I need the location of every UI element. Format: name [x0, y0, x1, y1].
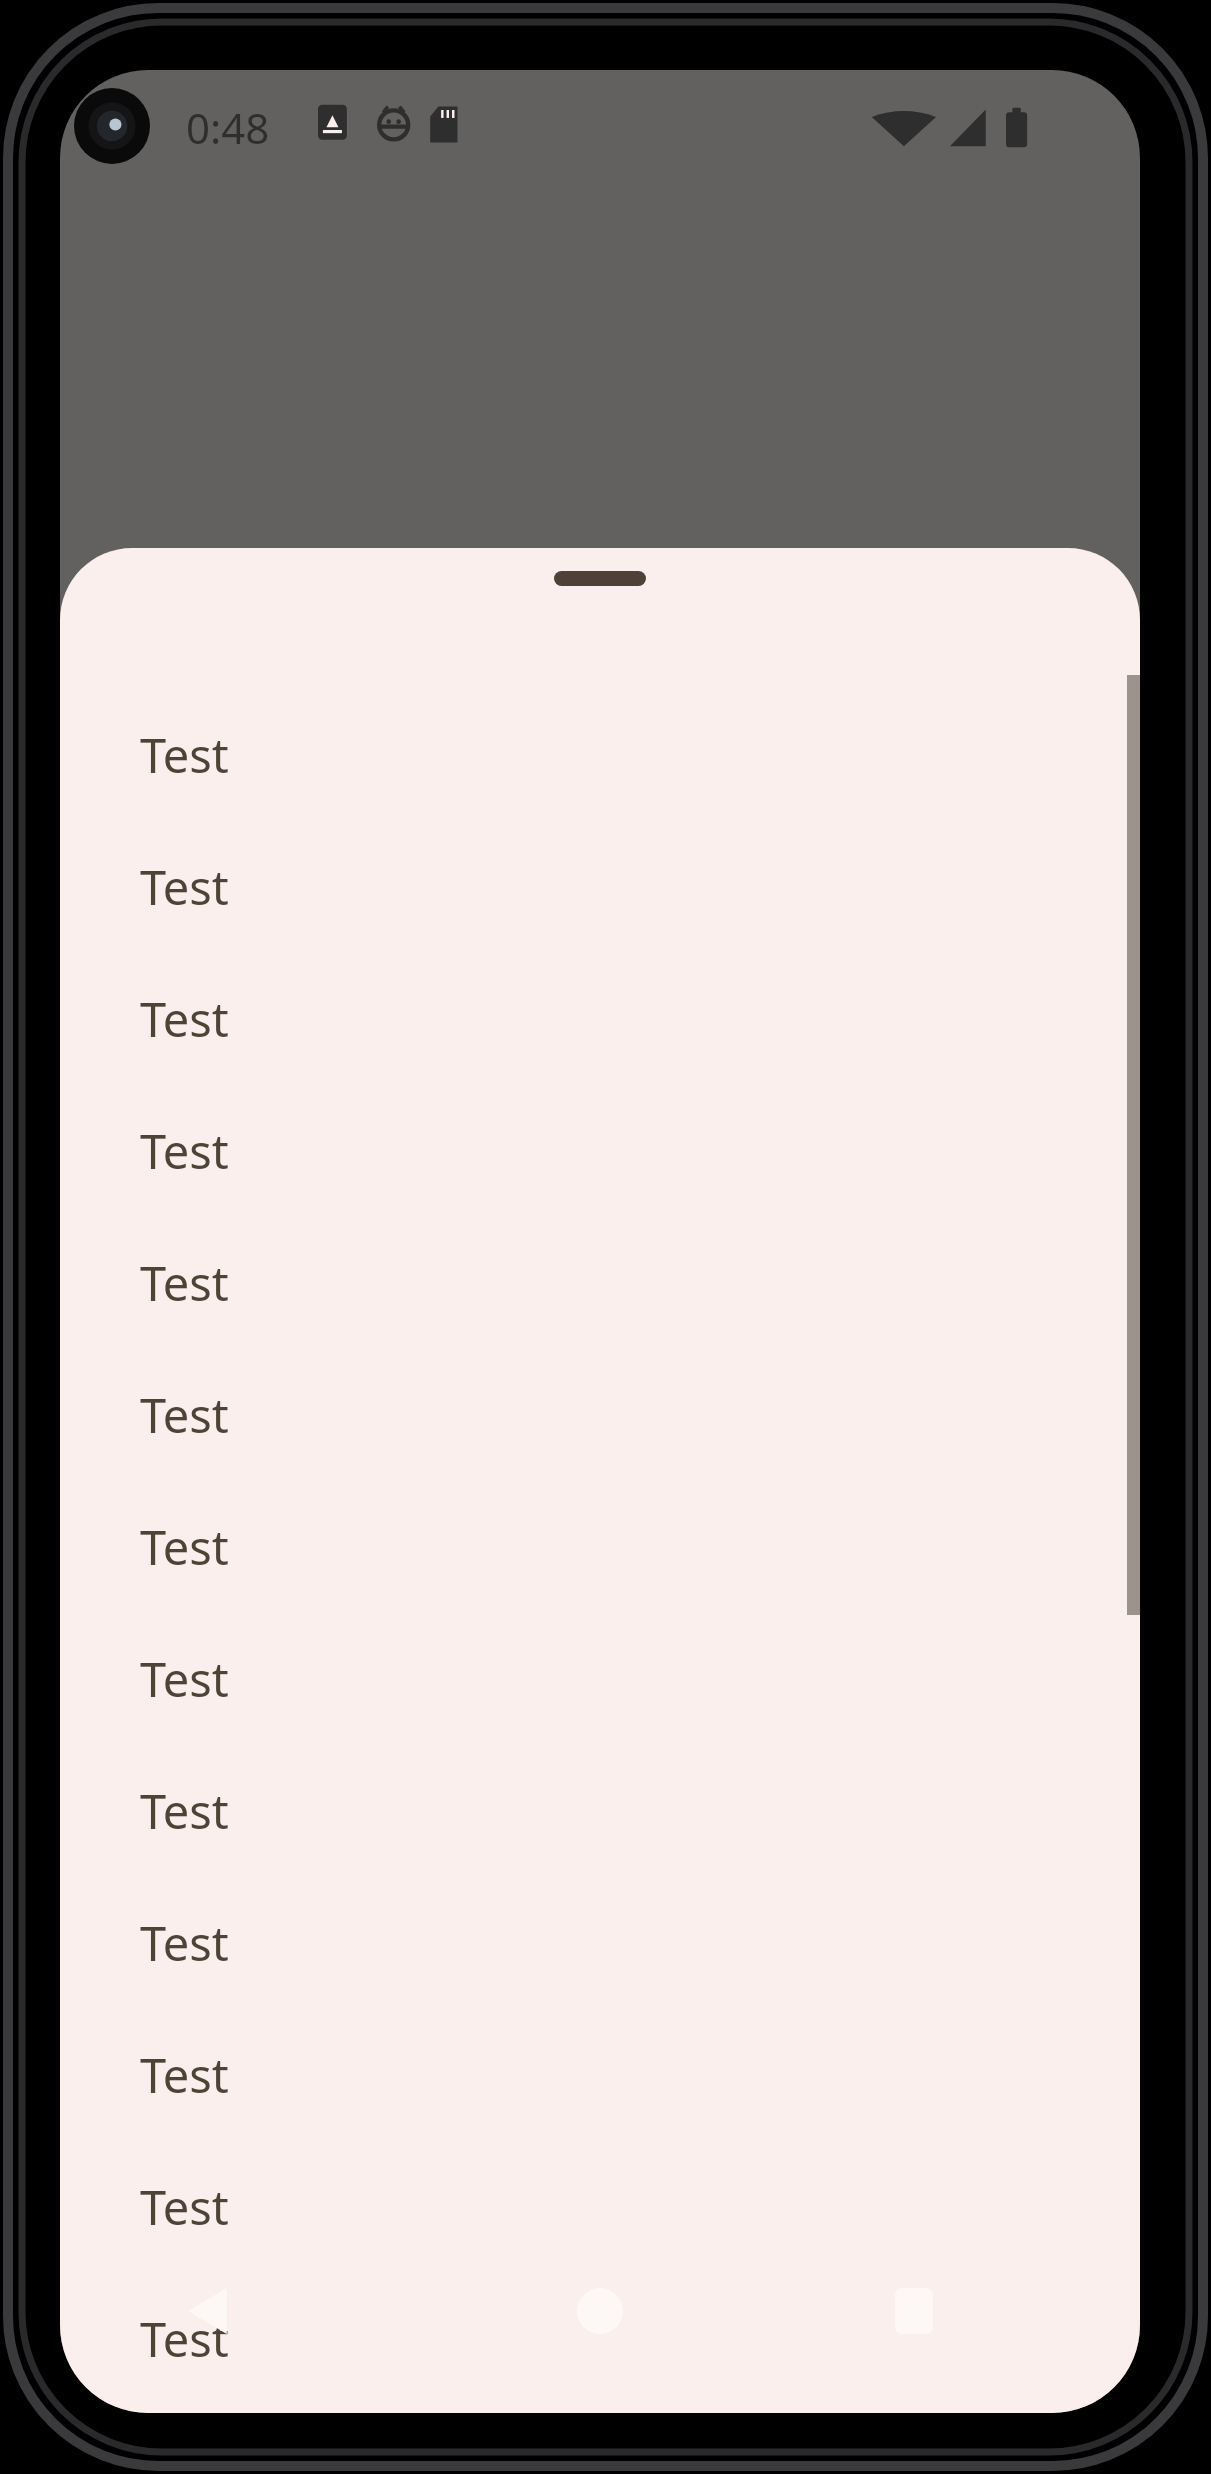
button[interactable]: Test [60, 2273, 1140, 2405]
button[interactable]: Test [60, 821, 1140, 953]
staticText: Test [140, 1119, 229, 1183]
button[interactable]: Home [552, 2263, 648, 2359]
staticText: Test [140, 723, 229, 787]
button[interactable]: Test [60, 2405, 1140, 2413]
button[interactable]: Test [60, 689, 1140, 821]
button[interactable]: Test [60, 1481, 1140, 1613]
button[interactable]: Test [60, 1085, 1140, 1217]
staticText: 0:48 [186, 99, 270, 156]
staticText: Test [140, 2043, 229, 2107]
staticText: Test [140, 1251, 229, 1315]
button[interactable]: Test [60, 1613, 1140, 1745]
staticText: Test [140, 1515, 229, 1579]
button[interactable]: Test [60, 1877, 1140, 2009]
button[interactable]: Test [60, 2009, 1140, 2141]
button[interactable]: Drag handle [554, 571, 646, 586]
staticText: Test [140, 1911, 229, 1975]
staticText: Test [140, 987, 229, 1051]
staticText: Test [140, 1647, 229, 1711]
button[interactable]: Test [60, 1217, 1140, 1349]
staticText: Test [140, 1779, 229, 1843]
button[interactable]: Test [60, 1349, 1140, 1481]
button[interactable]: Test [60, 2141, 1140, 2273]
staticText: Test [140, 2307, 229, 2371]
staticText: Test [140, 1383, 229, 1447]
staticText: Test [140, 2175, 229, 2239]
staticText: Test [140, 2405, 229, 2413]
button[interactable]: Back [160, 2263, 256, 2359]
button[interactable]: Recent apps [866, 2263, 962, 2359]
button[interactable]: Test [60, 953, 1140, 1085]
staticText: Test [140, 855, 229, 919]
button[interactable]: Test [60, 1745, 1140, 1877]
